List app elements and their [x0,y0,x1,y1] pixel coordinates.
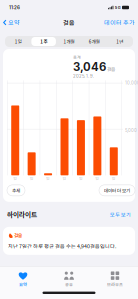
staticText: 일 [46,176,50,181]
staticText: 일 [30,176,34,181]
staticText: 1주 [40,38,47,45]
staticText: 3,046 [73,60,106,74]
button[interactable]: 6개월 [82,37,107,46]
staticText: 일 [13,176,17,181]
staticText: 일 [95,176,99,181]
button[interactable]: 모두 보기 [110,211,131,218]
staticText: 요약 [19,281,27,287]
staticText: 모두 보기 [110,211,131,218]
button[interactable]: 1개월 [57,37,81,46]
staticText: 1년 [116,38,123,45]
staticText: 5,000 [125,128,137,133]
button[interactable]: 추세 [7,185,25,196]
staticText: 요약 [8,18,20,27]
staticText: 데이터 추가 [104,18,135,27]
staticText: 걸음 [107,66,115,73]
staticText: 6개월 [89,38,100,45]
staticText: 일 [79,176,83,181]
staticText: 지난 7일간 하루 평균 걸음 수는 4,940걸음입니다. [8,242,116,250]
staticText: 일 [112,176,116,181]
staticText: 걸음 [63,18,75,27]
staticText: 1개월 [63,38,74,45]
button[interactable]: 브라우즈 [92,271,138,287]
staticText: 걸음 [14,232,22,239]
staticText: 일 [62,176,66,181]
staticText: 2025. 1. 9. [73,74,94,79]
button[interactable]: 요약 [0,271,46,287]
staticText: 하이라이트 [7,209,37,219]
staticText: 5G [115,5,121,10]
button[interactable]: 요약 [3,16,37,29]
staticText: 1일 [15,38,22,45]
button[interactable]: 1주 [31,37,56,46]
button[interactable]: 데이터 추가 [101,16,135,29]
button[interactable]: 1일 [6,37,31,46]
staticText: 10,000 [125,80,138,86]
button[interactable]: 1년 [107,37,132,46]
staticText: 데이터 더 보기 [104,187,130,194]
staticText: 추세 [12,187,20,194]
staticText: 11:26 [9,5,20,10]
staticText: 총계 [73,54,81,60]
staticText: 브라우즈 [107,281,123,287]
button[interactable]: 데이터 더 보기 [99,185,135,196]
button[interactable]: 공유 [46,271,92,288]
staticText: 공유 [65,281,73,288]
